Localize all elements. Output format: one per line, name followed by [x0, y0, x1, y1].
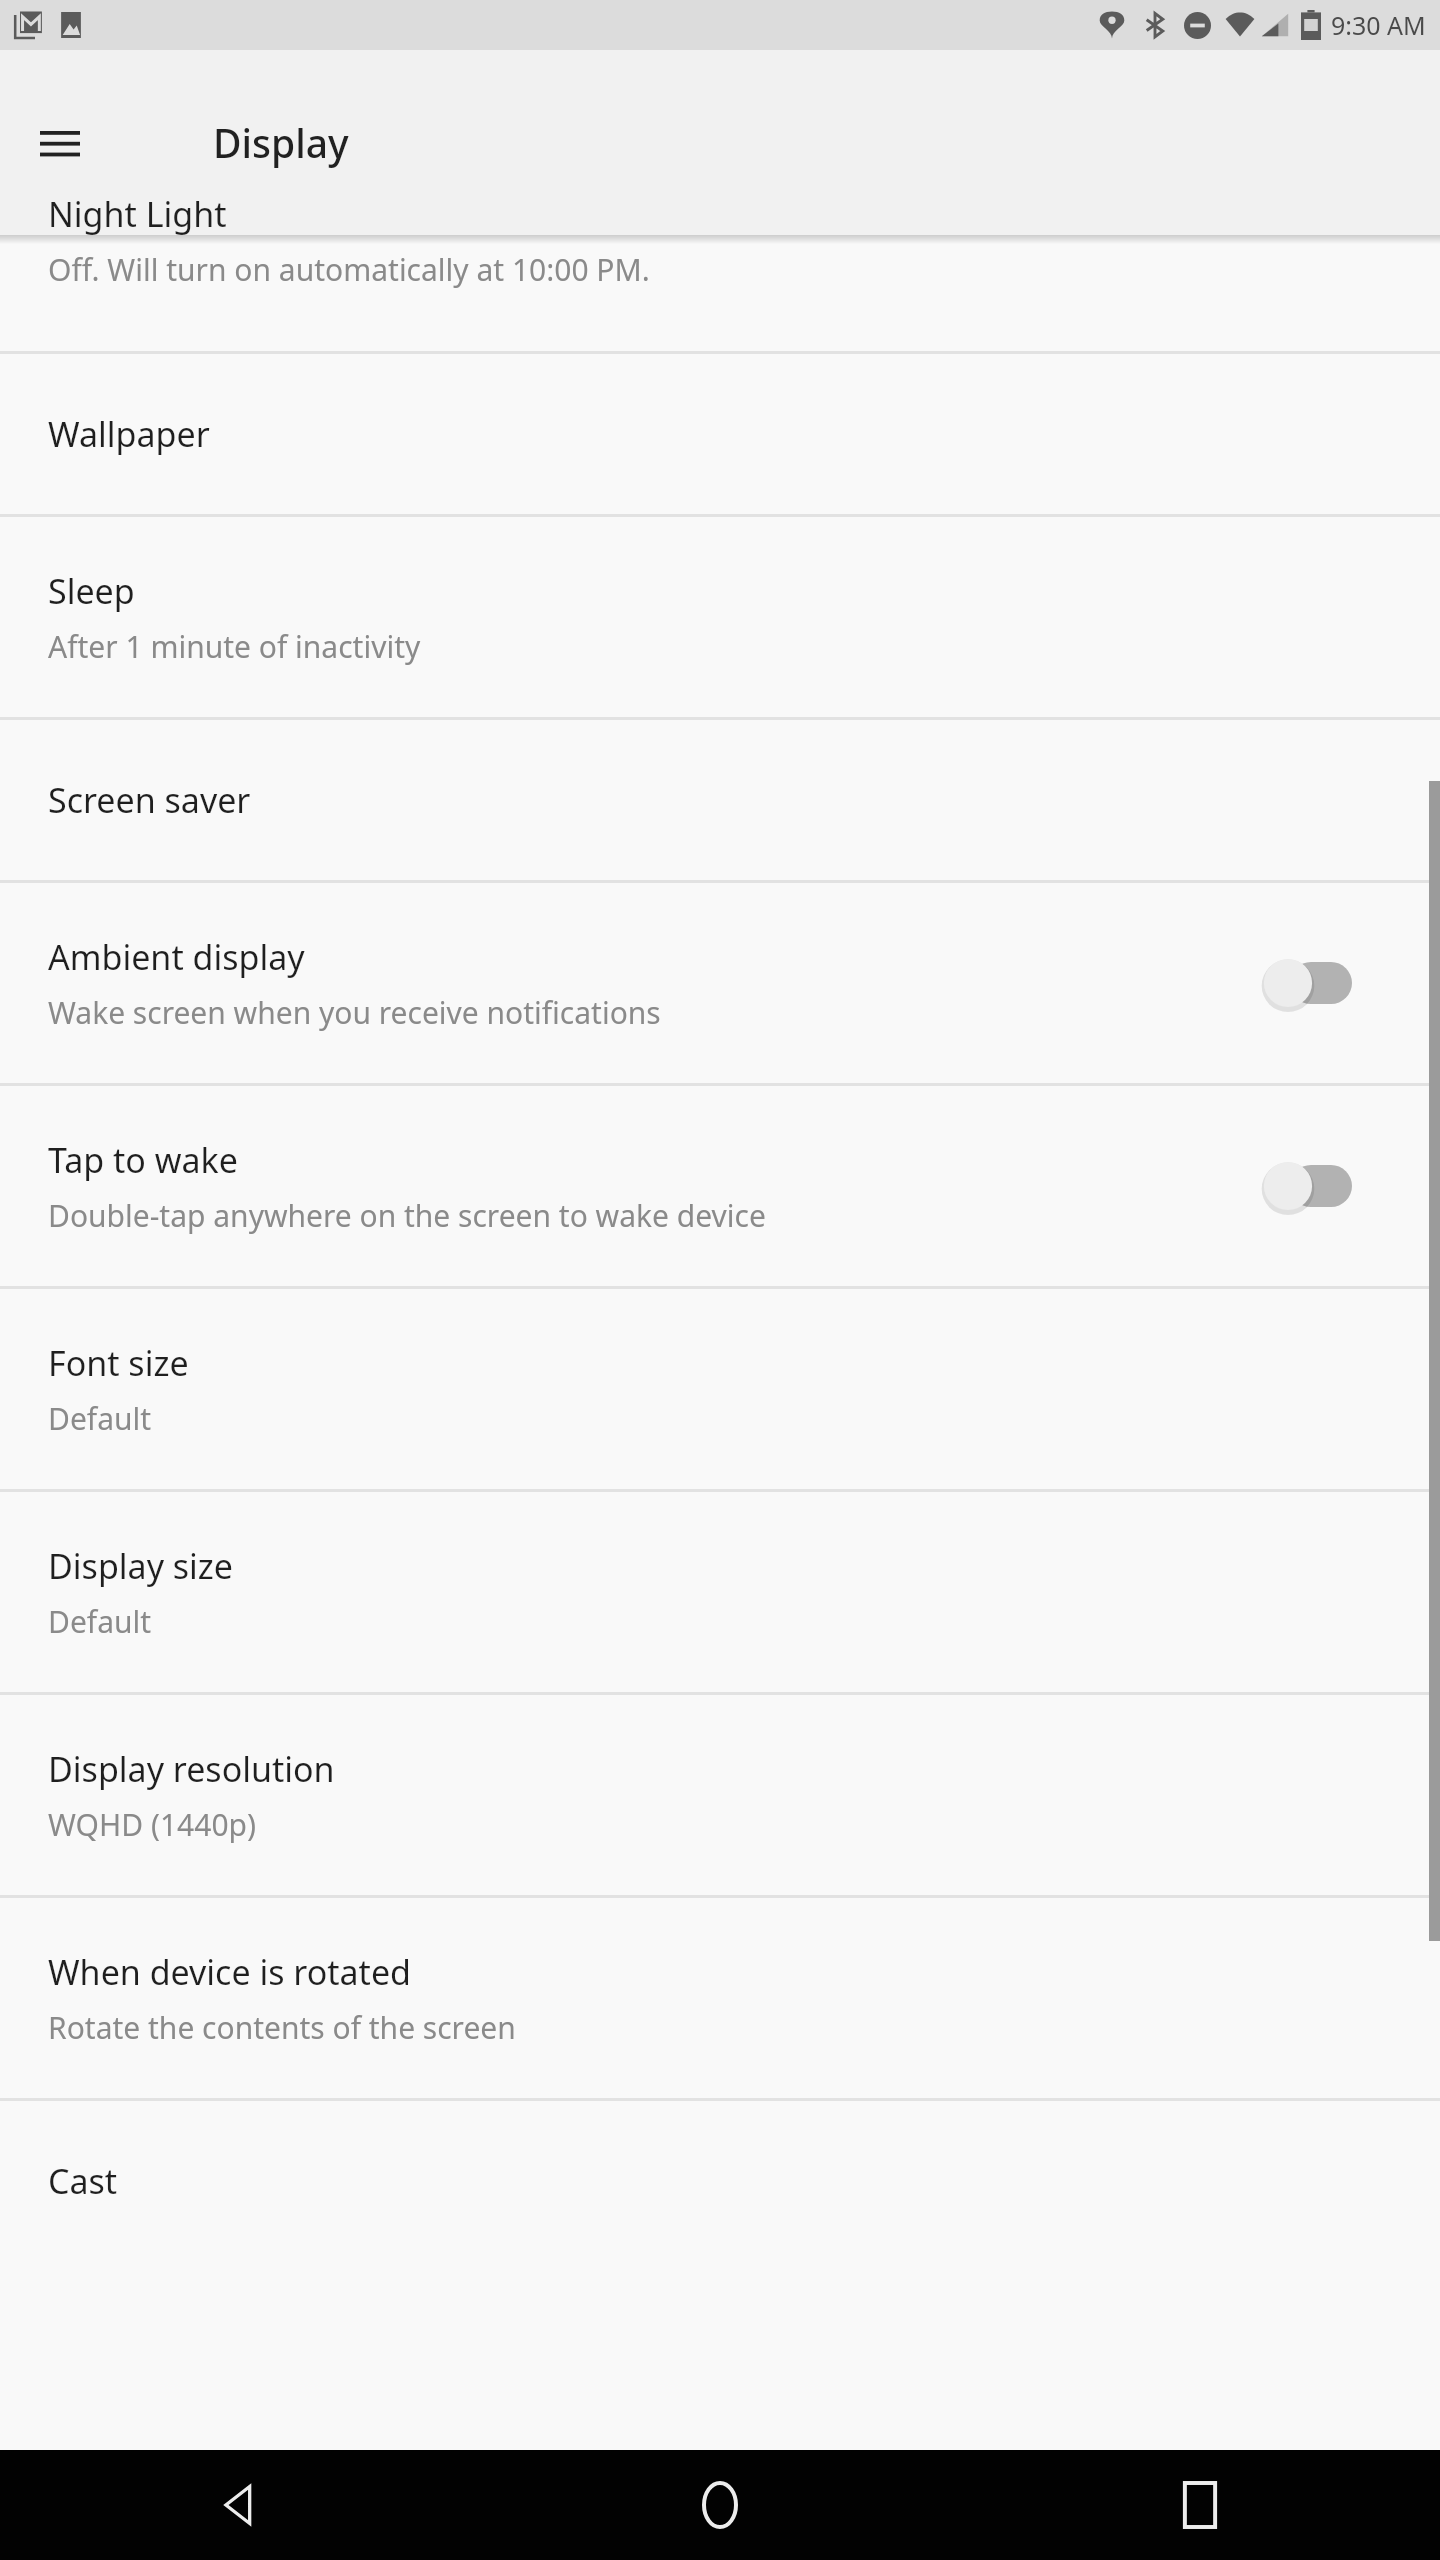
- staticText: Display: [213, 116, 349, 169]
- staticText: Rotate the contents of the screen: [48, 2007, 516, 2048]
- staticText: Ambient display: [48, 934, 305, 980]
- button[interactable]: Tap to wake toggle, off: [1260, 1146, 1370, 1226]
- staticText: Double-tap anywhere on the screen to wak…: [48, 1195, 766, 1236]
- staticText: Wallpaper: [48, 411, 210, 457]
- staticText: Sleep: [48, 568, 135, 614]
- button[interactable]: When device is rotated: [0, 1898, 1440, 2098]
- button[interactable]: Ambient display: [0, 883, 1440, 1083]
- staticText: Font size: [48, 1340, 189, 1386]
- staticText: When device is rotated: [48, 1949, 411, 1995]
- button[interactable]: Font size: [0, 1289, 1440, 1489]
- staticText: Default: [48, 1601, 152, 1642]
- staticText: Night Light: [48, 191, 227, 237]
- button[interactable]: Tap to wake: [0, 1086, 1440, 1286]
- button[interactable]: Cast: [0, 2101, 1440, 2261]
- button[interactable]: Sleep: [0, 517, 1440, 717]
- staticText: After 1 minute of inactivity: [48, 626, 421, 667]
- staticText: 9:30 AM: [1331, 8, 1426, 42]
- button[interactable]: Night Light: [0, 244, 1440, 351]
- button[interactable]: Home: [480, 2450, 960, 2560]
- staticText: Tap to wake: [48, 1137, 238, 1183]
- staticText: Cast: [48, 2158, 118, 2204]
- staticText: Display resolution: [48, 1746, 335, 1792]
- button[interactable]: Display size: [0, 1492, 1440, 1692]
- button[interactable]: Display resolution: [0, 1695, 1440, 1895]
- button[interactable]: Back: [0, 2450, 480, 2560]
- staticText: Screen saver: [48, 777, 251, 823]
- staticText: Wake screen when you receive notificatio…: [48, 992, 661, 1033]
- button[interactable]: Ambient display toggle, off: [1260, 943, 1370, 1023]
- staticText: Display size: [48, 1543, 234, 1589]
- button[interactable]: Open navigation menu: [24, 107, 96, 179]
- staticText: Off. Will turn on automatically at 10:00…: [48, 249, 650, 290]
- button[interactable]: Recent apps: [960, 2450, 1440, 2560]
- button[interactable]: Screen saver: [0, 720, 1440, 880]
- staticText: Default: [48, 1398, 152, 1439]
- staticText: WQHD (1440p): [48, 1804, 257, 1845]
- button[interactable]: Wallpaper: [0, 354, 1440, 514]
